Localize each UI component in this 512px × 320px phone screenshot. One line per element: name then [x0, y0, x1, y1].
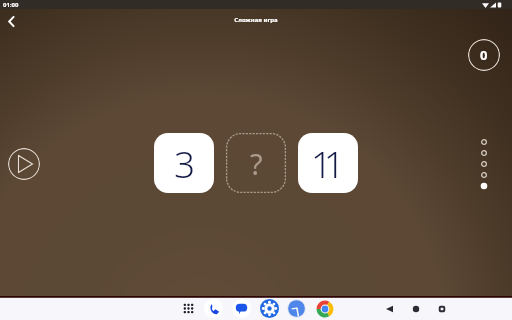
button[interactable]: Back [1, 11, 21, 31]
staticText: 01:00 [3, 1, 19, 9]
button[interactable]: Play [8, 148, 40, 180]
button[interactable]: Score [468, 39, 500, 71]
staticText: 11 [311, 138, 337, 188]
button[interactable]: 3 [154, 133, 214, 193]
button[interactable]: 11 [298, 133, 358, 193]
staticText: 0 [480, 46, 488, 64]
button[interactable]: Clock [287, 299, 306, 318]
button[interactable]: Back [379, 298, 400, 319]
staticText: ? [250, 144, 263, 183]
button[interactable]: All apps [179, 299, 198, 318]
staticText: Сложная игра [234, 16, 278, 24]
staticText: 3 [174, 138, 187, 188]
button[interactable]: Recents [431, 298, 452, 319]
button[interactable]: Home [405, 298, 426, 319]
button[interactable]: Empty slot [226, 133, 286, 193]
button[interactable]: Phone [204, 299, 223, 318]
button[interactable]: Settings [260, 299, 279, 318]
button[interactable]: Chrome [315, 299, 334, 318]
button[interactable]: Messages [232, 299, 251, 318]
